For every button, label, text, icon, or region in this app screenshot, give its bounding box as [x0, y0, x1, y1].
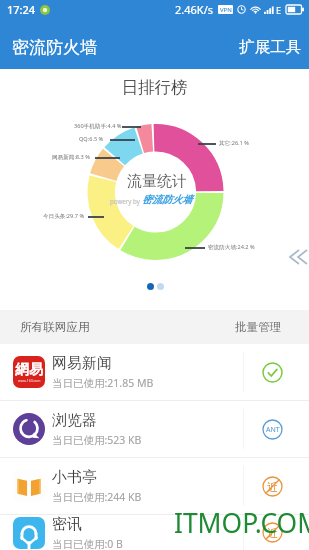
staticText: 当日已使用:523 KB	[52, 433, 142, 447]
button[interactable]: 扩展工具	[227, 29, 309, 65]
staticText: 近	[267, 526, 278, 540]
staticText: 密讯	[52, 515, 82, 534]
staticText: 密流防火墙	[142, 193, 192, 206]
staticText: 批量管理	[235, 320, 282, 335]
button[interactable]: 密流防火墙	[0, 29, 105, 66]
staticText: 扩展工具	[239, 37, 302, 57]
staticText: E	[276, 4, 282, 16]
staticText: 網易	[15, 361, 43, 379]
staticText: 360手机助手:4.4 %	[74, 122, 122, 130]
staticText: 浏览器	[52, 411, 97, 430]
button[interactable]: 密讯	[0, 515, 309, 550]
button[interactable]: 小书亭	[0, 458, 309, 514]
staticText: 当日已使用:0 B	[52, 537, 123, 550]
button[interactable]: Toggle network access	[244, 344, 301, 400]
button[interactable]: Previous page	[287, 247, 307, 267]
button[interactable]: Toggle network access	[244, 515, 301, 550]
staticText: 其它:26.1 %	[219, 139, 249, 147]
staticText: ANT	[266, 425, 280, 435]
button[interactable]: 浏览器	[0, 401, 309, 457]
staticText: 网易新闻:8.3 %	[52, 153, 90, 161]
staticText: ITMOP.COM	[174, 505, 309, 541]
staticText: 2.46K/s	[175, 2, 213, 17]
staticText: 今日头条:29.7 %	[43, 212, 85, 220]
staticText: powery by	[110, 197, 140, 205]
button[interactable]: 批量管理	[235, 320, 282, 335]
staticText: VPN	[220, 6, 232, 14]
staticText: 密流防火墙:24.2 %	[208, 243, 255, 251]
staticText: 小书亭	[52, 468, 97, 487]
staticText: 当日已使用:244 KB	[52, 490, 142, 504]
staticText: 17:24	[7, 2, 36, 17]
button[interactable]: 網易	[0, 344, 309, 400]
staticText: 所有联网应用	[20, 320, 90, 335]
staticText: www.163.com	[18, 378, 41, 383]
staticText: 流量统计	[127, 172, 187, 191]
staticText: 近	[267, 480, 278, 494]
button[interactable]: Toggle network access	[244, 401, 301, 457]
staticText: 当日已使用:21.85 MB	[52, 376, 154, 390]
staticText: 网易新闻	[52, 354, 112, 373]
staticText: QQ:6.5 %	[79, 135, 104, 143]
staticText: 日排行榜	[0, 77, 309, 98]
button[interactable]: Toggle network access	[244, 458, 301, 514]
staticText: 密流防火墙	[12, 37, 97, 58]
